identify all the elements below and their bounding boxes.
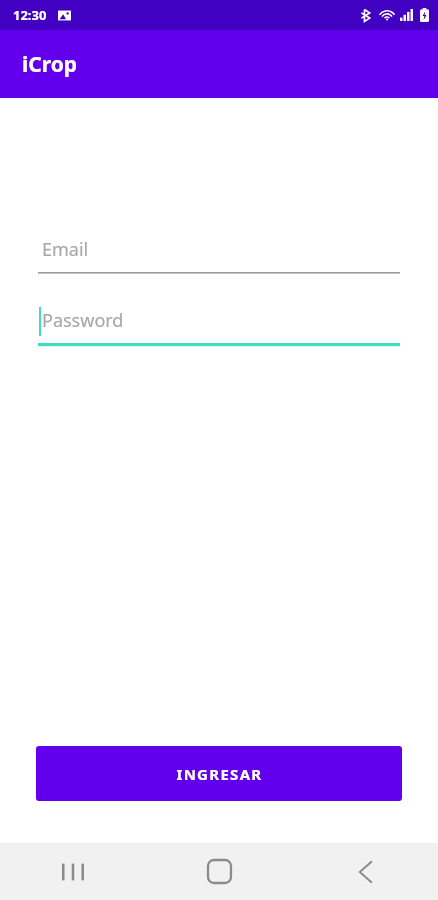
button[interactable]: Email: [38, 228, 400, 276]
button[interactable]: Password: [38, 299, 400, 347]
button[interactable]: Back: [292, 843, 438, 900]
button[interactable]: Home: [146, 843, 292, 900]
button[interactable]: INGRESAR: [36, 746, 402, 801]
staticText: iCrop: [22, 50, 78, 79]
staticText: 12:30: [13, 6, 47, 24]
staticText: Password: [42, 308, 124, 333]
staticText: INGRESAR: [176, 764, 263, 784]
button[interactable]: Recent apps: [0, 843, 146, 900]
staticText: Email: [42, 237, 89, 262]
